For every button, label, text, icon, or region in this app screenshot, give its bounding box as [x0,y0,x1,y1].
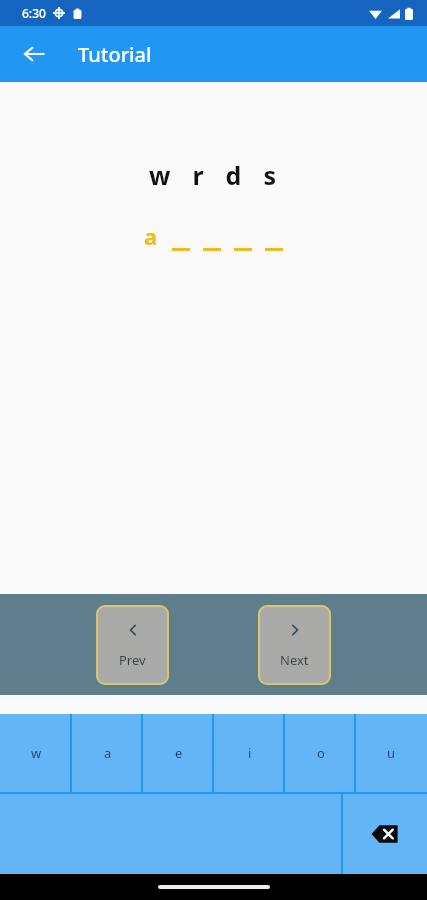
button[interactable]: w [0,714,72,792]
staticText: a [104,744,112,762]
staticText: Prev [119,651,146,669]
button[interactable]: e [143,714,214,792]
button[interactable]: Back [10,30,58,78]
staticText: o [317,744,325,762]
staticText: w [31,744,42,762]
staticText: Next [280,651,309,669]
staticText: w r d s [149,158,279,192]
button[interactable]: o [285,714,356,792]
staticText: u [387,744,396,762]
button[interactable]: i [214,714,285,792]
button[interactable]: Backspace [343,794,427,874]
button[interactable]: a [72,714,143,792]
staticText: 6:30 [22,5,46,21]
button[interactable]: Prev [96,605,169,685]
staticText: e [175,744,183,762]
staticText: a [144,221,158,251]
button[interactable]: Space [0,794,343,874]
staticText: i [248,744,252,762]
staticText: Tutorial [78,41,152,68]
button[interactable]: u [356,714,427,792]
button[interactable]: Next [258,605,331,685]
